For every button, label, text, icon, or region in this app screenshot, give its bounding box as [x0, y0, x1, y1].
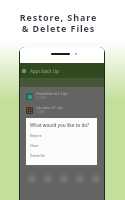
staticText: 12.8 MB: [36, 96, 46, 100]
button[interactable]: Share: [30, 144, 97, 148]
staticText: Delete file: [30, 154, 46, 158]
staticText: Calculator v2.1.apk: [36, 106, 63, 110]
other: Menu: [22, 69, 26, 73]
button[interactable]: Restore: [30, 134, 97, 138]
staticText: Apps back Up: [30, 68, 59, 74]
staticText: Restore, Share & Delete Files: [0, 11, 121, 35]
staticText: PhotoEditor v4.2.1.apk: [36, 92, 68, 96]
staticText: Share: [30, 144, 39, 148]
staticText: Restore: [30, 134, 42, 138]
staticText: What would you like to do?: [30, 122, 90, 128]
staticText: 5.4 MB: [36, 110, 45, 114]
button[interactable]: Delete file: [30, 154, 97, 158]
button[interactable]: Calculator v2.1.apk: [26, 106, 104, 114]
button[interactable]: PhotoEditor v4.2.1.apk: [26, 92, 104, 100]
